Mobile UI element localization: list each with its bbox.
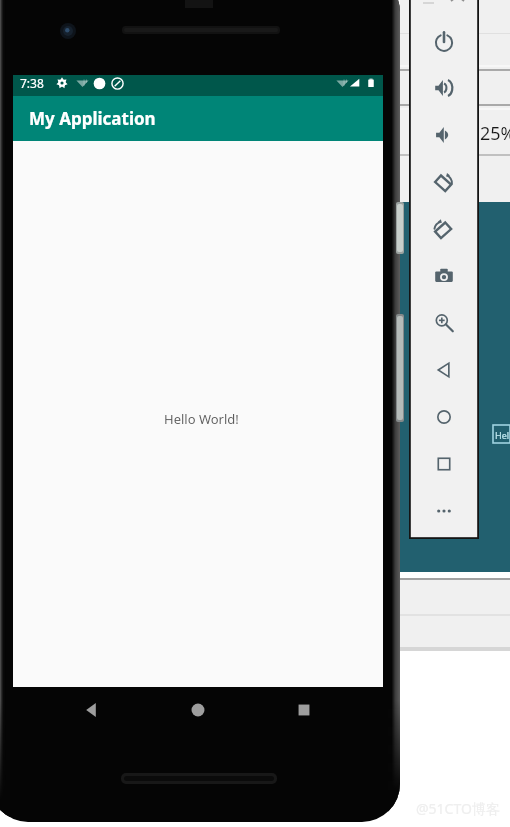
staticText: Hel [495, 429, 510, 441]
staticText: 25% [480, 121, 510, 146]
staticText: @51CTO博客 [416, 799, 500, 818]
button[interactable]: Back [64, 687, 118, 733]
button[interactable]: Volume up [409, 64, 479, 111]
button[interactable]: My Application [13, 96, 383, 141]
button[interactable]: Home [409, 393, 479, 440]
button[interactable]: Zoom [409, 299, 479, 346]
button[interactable]: Rotate right [409, 205, 479, 252]
button[interactable]: Take screenshot [409, 252, 479, 299]
button[interactable]: Home [171, 687, 225, 733]
button[interactable]: Rotate left [409, 158, 479, 205]
button[interactable]: Volume down [409, 111, 479, 158]
button[interactable]: Recent apps [277, 687, 331, 733]
staticText: 7:38 [20, 75, 44, 91]
button[interactable]: Overview [409, 440, 479, 487]
staticText: My Application [29, 107, 156, 130]
button[interactable]: Back [409, 346, 479, 393]
button[interactable]: Power [409, 17, 479, 64]
button[interactable]: More [409, 487, 479, 534]
staticText: Hello World! [164, 410, 239, 428]
